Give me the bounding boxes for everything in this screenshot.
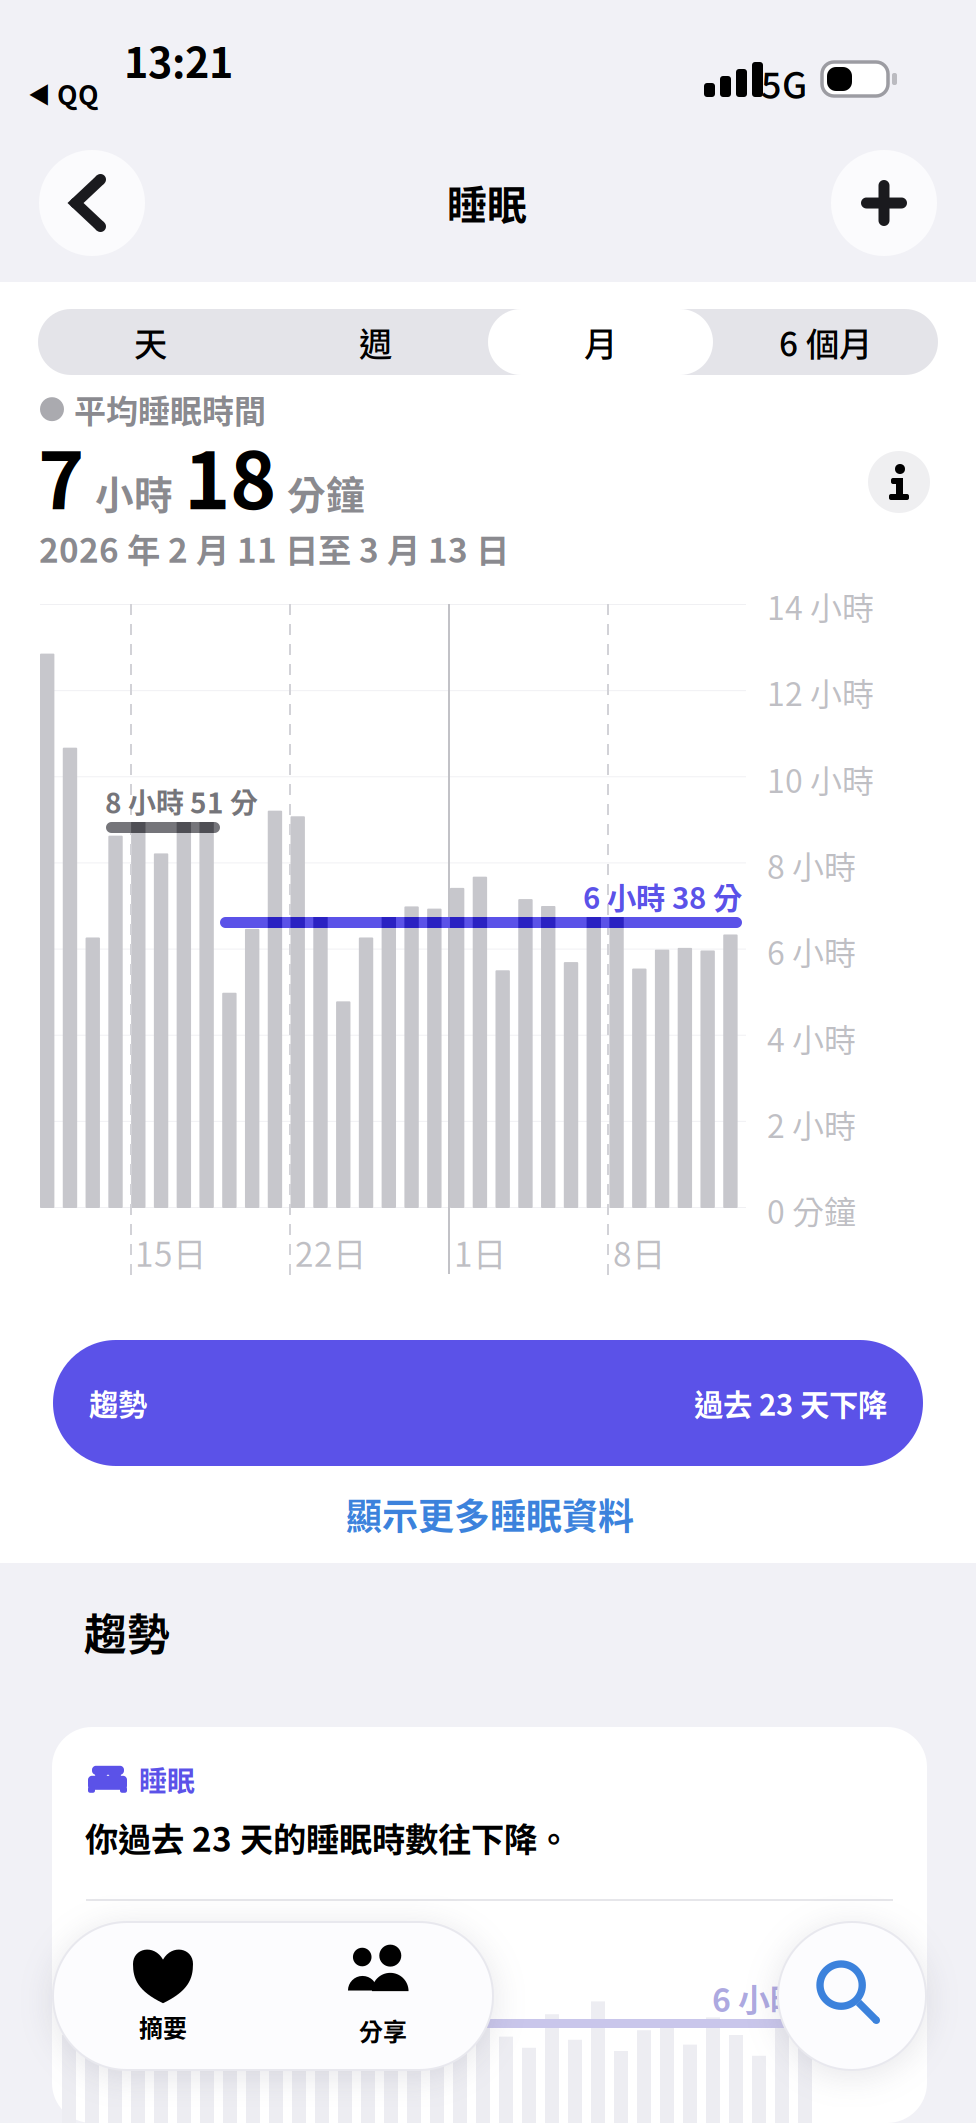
staticText: 10 小時 (767, 756, 874, 802)
staticText: 7 (38, 418, 84, 532)
staticText: ◀ (28, 77, 51, 110)
button[interactable]: 分享 (273, 1922, 493, 2070)
staticText: 4 小時 (767, 1015, 856, 1061)
staticText: 分鐘 (287, 464, 365, 520)
button[interactable]: 6 個月 (713, 309, 938, 375)
staticText: 2 小時 (767, 1101, 856, 1147)
staticText: 過去 23 天下降 (694, 1382, 887, 1424)
button[interactable]: 返回 (39, 150, 145, 256)
staticText: QQ (57, 74, 99, 113)
button[interactable]: 趨勢 (53, 1340, 923, 1466)
button[interactable]: 天 (38, 309, 263, 375)
button[interactable]: 週 (263, 309, 488, 375)
staticText: 8日 (613, 1228, 665, 1276)
staticText: 6 小時 (712, 1975, 802, 2021)
button[interactable]: 顯示更多睡眠資料 (346, 1488, 634, 1540)
staticText: 2026 年 2 月 11 日至 3 月 13 日 (39, 524, 509, 572)
staticText: 你過去 23 天的睡眠時數往下降。 (85, 1813, 570, 1861)
staticText: 6 個月 (779, 318, 872, 366)
staticText: 平均睡眠時間 (74, 386, 266, 432)
button[interactable]: 加入資料 (831, 150, 937, 256)
staticText: 天 (134, 318, 167, 366)
staticText: 5G (761, 57, 807, 109)
button[interactable]: 搜尋 (778, 1922, 926, 2070)
staticText: 6 小時 38 分 (583, 875, 742, 917)
staticText: 6 小時 (767, 928, 856, 974)
staticText: 22日 (295, 1228, 366, 1276)
staticText: 18 (184, 418, 276, 532)
button[interactable]: 關於睡眠資料 (868, 451, 930, 513)
staticText: 15日 (135, 1228, 206, 1276)
staticText: 趨勢 (89, 1382, 147, 1424)
staticText: 睡眠 (139, 1759, 195, 1799)
staticText: 月 (584, 318, 617, 366)
staticText: 8 小時 (767, 842, 856, 888)
staticText: 14 小時 (767, 583, 874, 629)
staticText: 0 分鐘 (767, 1187, 856, 1233)
button[interactable]: 摘要 (53, 1922, 273, 2070)
staticText: 週 (359, 318, 392, 366)
staticText: 1日 (454, 1228, 506, 1276)
staticText: 摘要 (139, 2009, 187, 2044)
staticText: 12 小時 (767, 669, 874, 715)
staticText: 趨勢 (84, 1601, 170, 1663)
button[interactable]: 月 (488, 309, 713, 375)
staticText: 小時 (95, 464, 173, 520)
staticText: 13:21 (124, 30, 233, 90)
staticText: 顯示更多睡眠資料 (346, 1488, 634, 1540)
staticText: 8 小時 51 分 (105, 781, 258, 821)
staticText: 分享 (359, 2013, 407, 2047)
staticText: 睡眠 (447, 173, 527, 231)
